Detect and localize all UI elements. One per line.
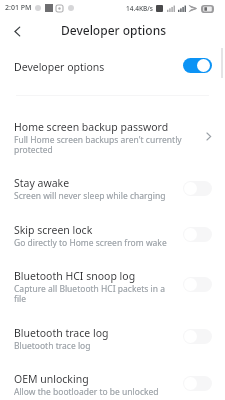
button[interactable]: OEM unlocking bbox=[0, 363, 225, 400]
staticText: 14.4KB/s bbox=[126, 4, 153, 13]
staticText: OEM unlocking bbox=[14, 372, 89, 386]
staticText: Skip screen lock bbox=[14, 223, 93, 237]
button[interactable]: Stay awake bbox=[0, 167, 225, 214]
staticText: Bluetooth HCI snoop log bbox=[14, 269, 136, 283]
staticText: Screen will never sleep while charging bbox=[14, 190, 166, 202]
staticText: Go directly to Home screen from wake bbox=[14, 237, 167, 249]
staticText: Bluetooth trace log bbox=[14, 340, 91, 352]
button[interactable]: Bluetooth HCI snoop log bbox=[0, 260, 225, 317]
button[interactable]: Back bbox=[2, 16, 32, 46]
staticText: Bluetooth trace log bbox=[14, 326, 109, 340]
staticText: Developer options bbox=[61, 22, 167, 38]
staticText: Home screen backup password bbox=[14, 120, 169, 134]
button[interactable]: Home screen backup password bbox=[0, 96, 225, 167]
staticText: Allow the bootloader to be unlocked bbox=[14, 386, 159, 398]
staticText: Full Home screen backups aren't currentl… bbox=[14, 134, 183, 155]
staticText: Developer options bbox=[14, 60, 105, 74]
staticText: 2:01 PM bbox=[5, 3, 32, 13]
staticText: Stay awake bbox=[14, 176, 70, 190]
button[interactable]: Skip screen lock bbox=[0, 214, 225, 260]
button[interactable]: Developer options bbox=[0, 47, 225, 95]
button[interactable]: Bluetooth trace log bbox=[0, 317, 225, 363]
staticText: Capture all Bluetooth HCI packets in a f… bbox=[14, 283, 175, 304]
